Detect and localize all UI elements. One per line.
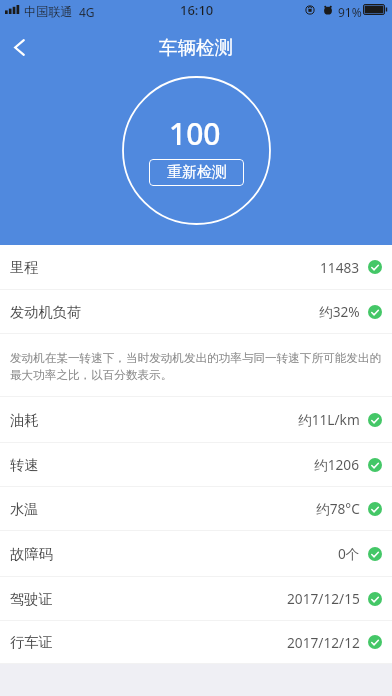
staticText: 4G [79,4,95,20]
staticText: 发动机在某一转速下，当时发动机发出的功率与同一转速下所可能发出的最大功率之比，以… [10,351,384,382]
button[interactable]: 重新检测 [149,159,244,186]
button[interactable]: 转速 [0,443,392,486]
staticText: 100 [169,113,221,154]
staticText: 发动机负荷 [10,303,81,321]
button[interactable]: Back [0,25,39,69]
staticText: 重新检测 [167,163,227,182]
staticText: 行车证 [10,633,53,651]
staticText: 0个 [338,544,360,563]
staticText: 2017/12/15 [287,589,360,608]
button[interactable]: 里程 [0,245,392,289]
staticText: 故障码 [10,545,53,563]
staticText: 16:10 [180,1,214,19]
staticText: 约32% [319,302,360,321]
button[interactable]: 行车证 [0,621,392,663]
button[interactable]: 故障码 [0,531,392,576]
staticText: 11483 [320,258,360,277]
button[interactable]: 发动机负荷 [0,290,392,333]
staticText: 里程 [10,258,39,276]
staticText: 转速 [10,456,39,474]
staticText: 水温 [10,500,39,518]
button[interactable]: 驾驶证 [0,577,392,620]
staticText: 2017/12/12 [287,633,360,652]
staticText: 91% [338,4,362,20]
staticText: 约1206 [314,455,360,474]
staticText: 中国联通 [24,4,73,19]
button[interactable]: 油耗 [0,397,392,442]
staticText: 约78°C [316,499,360,518]
staticText: 车辆检测 [159,36,233,59]
staticText: 驾驶证 [10,590,53,608]
staticText: 油耗 [10,411,39,429]
button[interactable]: 水温 [0,487,392,530]
staticText: 约11L/km [298,410,360,429]
